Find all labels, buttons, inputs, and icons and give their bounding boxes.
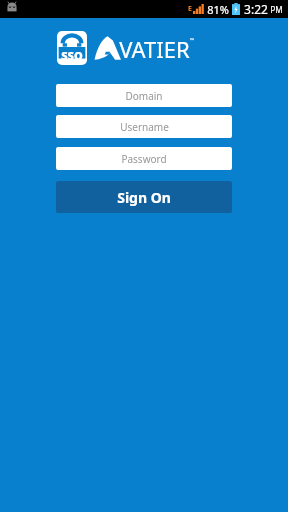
staticText: Domain xyxy=(125,89,163,103)
button[interactable]: Username xyxy=(56,115,232,138)
button[interactable]: Password xyxy=(56,147,232,170)
staticText: 81% xyxy=(207,2,229,17)
staticText: 3:22 xyxy=(244,1,268,17)
button[interactable]: Sign On xyxy=(56,181,232,213)
staticText: Username xyxy=(120,120,169,134)
staticText: Password xyxy=(121,152,167,166)
staticText: VATIER xyxy=(119,34,190,62)
staticText: SSO xyxy=(61,48,83,63)
staticText: Sign On xyxy=(117,188,171,207)
staticText: E xyxy=(188,4,192,14)
staticText: ™ xyxy=(190,37,194,44)
button[interactable]: Domain xyxy=(56,84,232,107)
staticText: PM xyxy=(270,4,283,15)
other: Avatier SSO logo xyxy=(57,31,87,65)
